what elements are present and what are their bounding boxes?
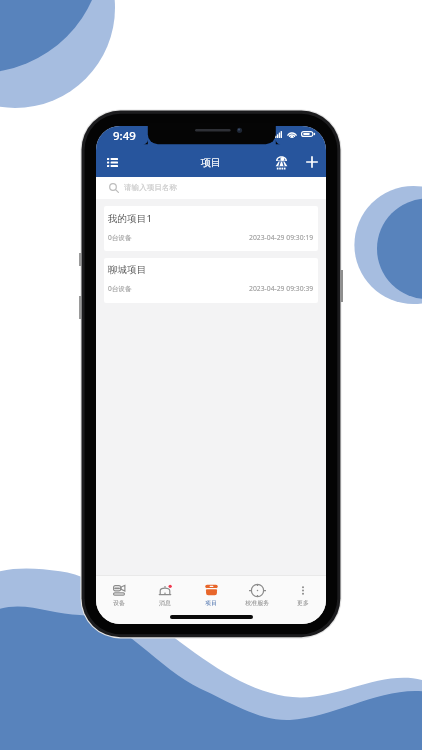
button[interactable]: Survey station [265, 147, 297, 177]
button[interactable]: 聊城项目 [104, 258, 318, 303]
button[interactable]: 我的项目1 [104, 206, 318, 251]
staticText: 校准服务 [245, 599, 269, 606]
staticText: 9:49 [113, 128, 136, 144]
staticText: 消息 [159, 599, 171, 606]
staticText: 项目 [205, 599, 217, 606]
button[interactable]: 设备 [96, 576, 142, 609]
staticText: 聊城项目 [108, 264, 147, 276]
staticText: 2023-04-29 09:30:39 [249, 284, 314, 293]
staticText: 0台设备 [108, 233, 132, 242]
staticText: 0台设备 [108, 284, 132, 293]
staticText: 更多 [297, 599, 309, 606]
button[interactable]: 校准服务 [234, 576, 280, 609]
staticText: 项目 [201, 156, 221, 169]
staticText: 请输入项目名称 [124, 183, 178, 193]
staticText: 我的项目1 [108, 212, 152, 225]
staticText: 2023-04-29 09:30:19 [249, 233, 314, 242]
button[interactable]: Add [296, 147, 326, 177]
button[interactable]: Menu [97, 147, 127, 177]
button[interactable]: 项目 [188, 576, 234, 609]
button[interactable]: 更多 [280, 576, 326, 609]
button[interactable]: 消息 [142, 576, 188, 609]
staticText: 设备 [113, 599, 125, 606]
